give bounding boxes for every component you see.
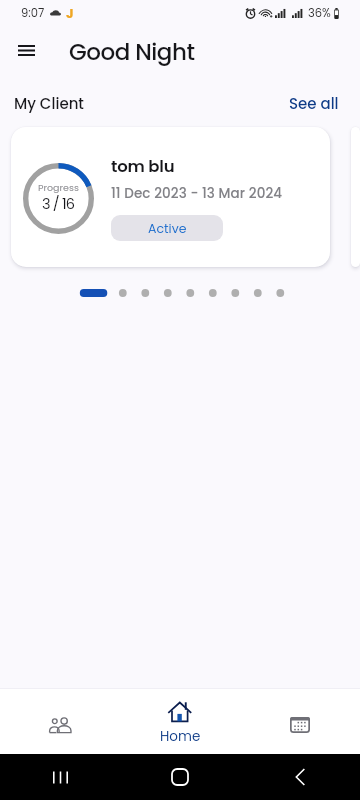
button[interactable]: Progress (11, 127, 330, 267)
staticText: 9:07 (21, 5, 45, 21)
staticText: My Client (14, 93, 84, 114)
staticText: Home (160, 727, 201, 746)
staticText: Good Night (69, 36, 195, 68)
button[interactable]: Open navigation menu (8, 32, 44, 68)
staticText: 11 Dec 2023 - 13 Mar 2024 (111, 184, 283, 203)
button[interactable]: Calendar (240, 689, 360, 754)
staticText: Active (148, 220, 187, 237)
staticText: Progress (38, 181, 79, 194)
staticText: See all (289, 93, 339, 114)
button[interactable]: See all (284, 90, 344, 117)
staticText: tom blu (111, 155, 175, 178)
button[interactable]: Clients (0, 689, 120, 754)
button[interactable]: Active (111, 215, 223, 241)
staticText: 36% (308, 5, 331, 21)
button[interactable]: Home (120, 689, 240, 754)
staticText: 3 / 16 (42, 194, 75, 214)
staticText: J (66, 4, 74, 22)
